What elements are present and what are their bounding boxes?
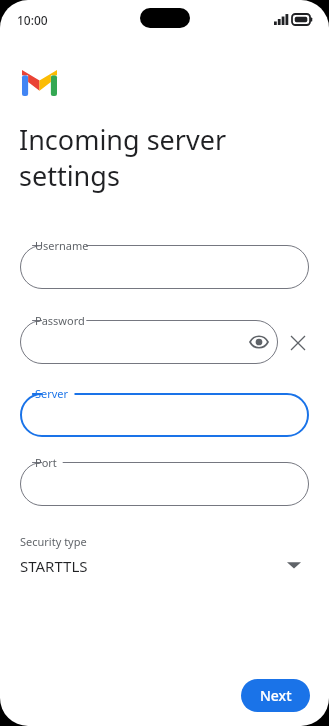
- button[interactable]: Username: [20, 245, 309, 289]
- button[interactable]: Clear password: [287, 332, 309, 354]
- staticText: STARTTLS: [20, 556, 88, 576]
- button[interactable]: Server: [20, 393, 309, 437]
- button[interactable]: Next: [241, 679, 310, 712]
- staticText: Next: [260, 686, 292, 705]
- staticText: Security type: [20, 534, 87, 549]
- staticText: 10:00: [17, 12, 48, 28]
- staticText: Incoming server settings: [19, 121, 227, 194]
- button[interactable]: Show password: [247, 330, 271, 354]
- staticText: Password: [35, 313, 85, 328]
- staticText: Username: [35, 238, 89, 253]
- staticText: Port: [35, 455, 57, 470]
- button[interactable]: Security type: [20, 531, 309, 585]
- button[interactable]: Password: [20, 320, 278, 364]
- button[interactable]: Port: [20, 462, 309, 506]
- staticText: Server: [35, 386, 69, 401]
